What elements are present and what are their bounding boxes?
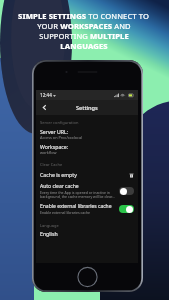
button[interactable]: Toggle off bbox=[119, 187, 134, 195]
staticText: SUPPORTING MULTIPLE bbox=[39, 31, 129, 41]
staticText: Language bbox=[40, 223, 59, 228]
staticText: Every time the App is opened or inactive… bbox=[40, 190, 115, 199]
button[interactable]: Workspace: bbox=[40, 141, 134, 156]
staticText: Workspace: bbox=[40, 143, 69, 150]
button[interactable]: Cache is empty bbox=[40, 168, 134, 181]
staticText: Settings bbox=[76, 104, 98, 112]
button[interactable]: Back bbox=[37, 100, 51, 114]
staticText: SIMPLE SETTINGS TO CONNECT TO bbox=[18, 11, 149, 21]
staticText: LANGUAGES bbox=[60, 41, 108, 51]
staticText: Server URL: bbox=[40, 128, 69, 135]
staticText: 12:44 bbox=[40, 92, 52, 98]
staticText: Server configuration bbox=[40, 120, 79, 125]
staticText: YOUR WORKSPACES AND bbox=[37, 21, 131, 31]
staticText: Enable external libraries cache bbox=[40, 210, 91, 215]
staticText: workflow bbox=[40, 150, 57, 155]
other: Delete cache bbox=[128, 172, 134, 178]
button[interactable]: English bbox=[40, 229, 134, 239]
staticText: English bbox=[40, 230, 58, 237]
button[interactable]: Auto clear cache bbox=[40, 181, 134, 201]
staticText: Enable external libraries cache bbox=[40, 203, 112, 210]
button[interactable]: Toggle on bbox=[119, 205, 134, 213]
staticText: Access on Proc/xxxlocal bbox=[40, 135, 83, 140]
staticText: Cache is empty bbox=[40, 171, 77, 178]
button[interactable]: Enable external libraries cache bbox=[40, 201, 134, 217]
staticText: Clear Cache bbox=[40, 162, 63, 167]
button[interactable]: Server URL: bbox=[40, 126, 134, 141]
staticText: Auto clear cache bbox=[40, 183, 79, 190]
